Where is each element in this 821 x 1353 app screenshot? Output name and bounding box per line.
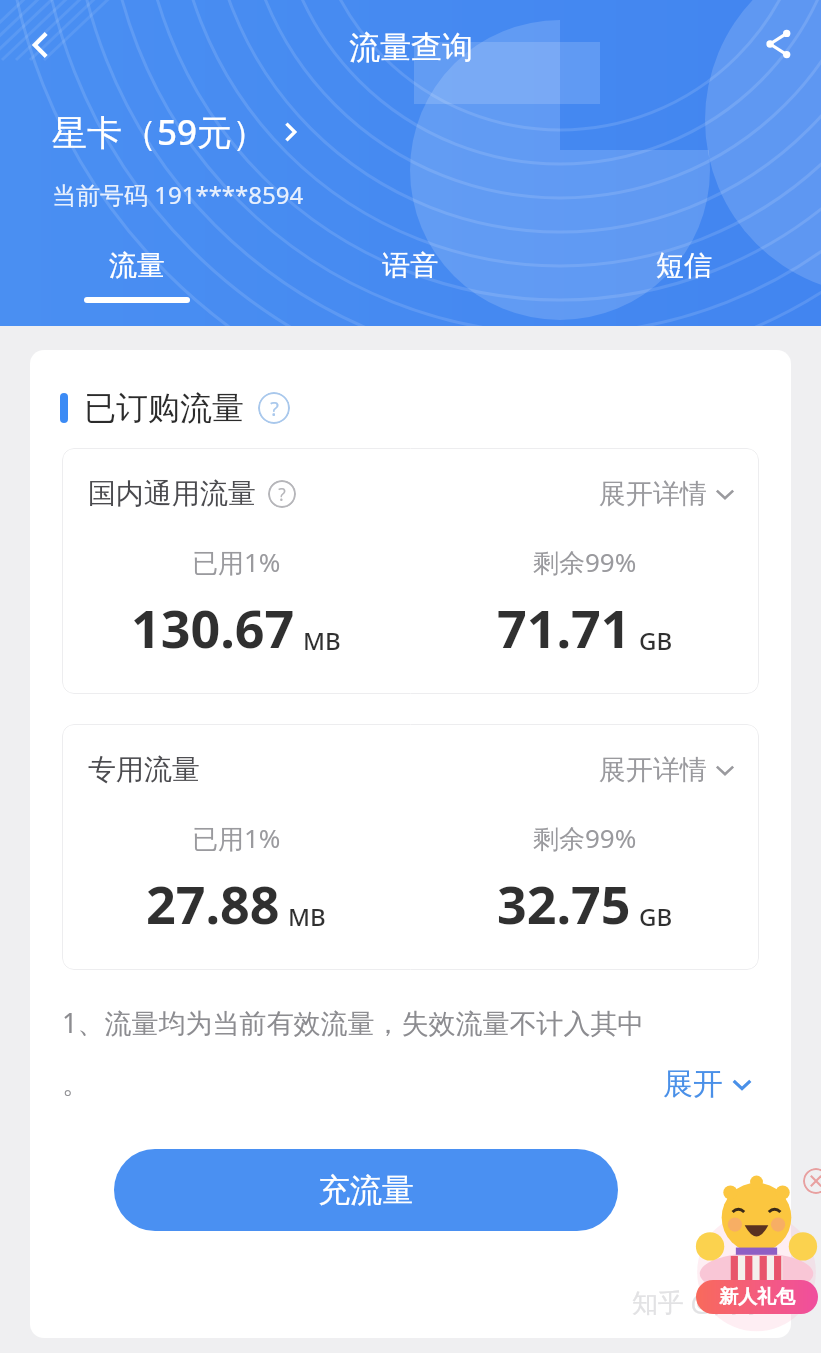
staticText: 短信 (656, 248, 712, 283)
staticText: 已用1% (192, 820, 281, 856)
button[interactable]: 新人礼包 (696, 1280, 818, 1314)
staticText: 剩余99% (533, 820, 637, 856)
staticText: 流量查询 (349, 28, 473, 67)
button[interactable]: 专用流量 (62, 724, 759, 970)
staticText: 。 (62, 1067, 89, 1101)
staticText: 展开详情 (599, 477, 707, 511)
staticText: GB (639, 900, 673, 933)
staticText: 1、流量均为当前有效流量，失效流量不计入其中 (62, 1004, 645, 1041)
staticText: 130.67 (131, 592, 295, 663)
button[interactable]: 关闭广告 (803, 1168, 821, 1194)
staticText: 剩余99% (533, 544, 637, 580)
button[interactable]: 语音 (273, 248, 547, 316)
staticText: 国内通用流量 (88, 476, 256, 511)
staticText: 知乎 @阿丁 (632, 1284, 767, 1320)
staticText: ? (278, 482, 286, 506)
button[interactable]: 展开 (659, 1063, 759, 1105)
staticText: 27.88 (146, 868, 280, 939)
button[interactable]: 新人礼包广告 (692, 1160, 821, 1320)
staticText: GB (639, 624, 673, 657)
staticText: 专用流量 (88, 752, 200, 787)
staticText: 语音 (382, 248, 438, 283)
staticText: 已订购流量 (84, 388, 244, 428)
button[interactable]: 流量 (0, 248, 273, 316)
button[interactable]: 充流量 (114, 1149, 618, 1231)
staticText: 展开详情 (599, 753, 707, 787)
staticText: 充流量 (318, 1170, 414, 1210)
staticText: 71.71 (497, 592, 631, 663)
button[interactable]: 帮助 (258, 392, 290, 424)
button[interactable]: 帮助 (268, 480, 296, 508)
staticText: 新人礼包 (719, 1285, 795, 1309)
button[interactable]: 星卡（59元） (52, 108, 306, 156)
button[interactable]: Share (751, 16, 807, 72)
button[interactable]: Back (12, 16, 70, 74)
staticText: 星卡（59元） (52, 108, 268, 156)
staticText: MB (303, 624, 341, 657)
staticText: MB (288, 900, 326, 933)
staticText: 流量 (109, 248, 165, 283)
staticText: 32.75 (497, 868, 631, 939)
staticText: 已用1% (192, 544, 281, 580)
button[interactable]: 短信 (547, 248, 821, 316)
button[interactable]: 国内通用流量 (62, 448, 759, 694)
staticText: 展开 (663, 1065, 723, 1103)
staticText: 当前号码 191****8594 (52, 178, 304, 211)
staticText: ? (270, 395, 279, 422)
